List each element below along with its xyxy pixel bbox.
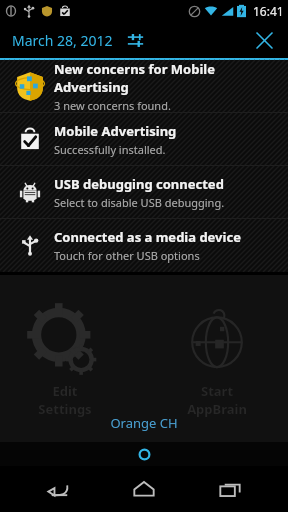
button[interactable]: Quick settings — [121, 26, 149, 54]
staticText: 3 new concerns found. — [54, 98, 171, 112]
staticText: Edit Settings — [22, 382, 108, 418]
staticText: USB debugging connected — [54, 175, 224, 193]
button[interactable]: Home — [116, 466, 172, 512]
staticText: March 28, 2012 — [12, 31, 113, 50]
button[interactable]: Mobile Advertising — [0, 113, 288, 165]
staticText: Start AppBrain — [174, 382, 260, 418]
staticText: Orange CH — [110, 414, 178, 432]
button[interactable]: Back — [30, 466, 86, 512]
button[interactable]: USB debugging connected — [0, 166, 288, 218]
staticText: Mobile Advertising — [54, 122, 177, 140]
button[interactable]: Recent apps — [202, 466, 258, 512]
staticText: Touch for other USB options — [54, 248, 200, 263]
staticText: 16:41 — [253, 3, 284, 19]
button[interactable]: Connected as a media device — [0, 219, 288, 271]
button[interactable]: New concerns for Mobile Advertising — [0, 60, 288, 112]
staticText: New concerns for Mobile Advertising — [54, 60, 278, 96]
staticText: Select to disable USB debugging. — [54, 195, 225, 210]
staticText: Successfully installed. — [54, 142, 166, 157]
button[interactable]: Clear all notifications — [248, 24, 280, 56]
staticText: Connected as a media device — [54, 228, 241, 246]
